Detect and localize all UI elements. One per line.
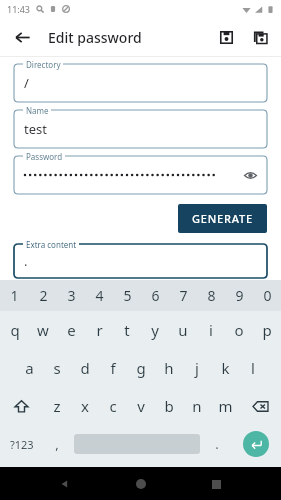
staticText: g [136,358,146,378]
staticText: y [151,320,159,340]
staticText: 1 [10,286,19,305]
button[interactable]: 6 [141,280,169,311]
button[interactable]: t [113,311,141,349]
button[interactable]: Directory [14,64,267,102]
button[interactable]: Enter [243,431,269,457]
button[interactable]: . [203,425,231,463]
staticText: 5 [123,286,132,305]
button[interactable]: i [197,311,225,349]
staticText: 0 [263,286,272,305]
staticText: t [124,320,130,340]
staticText: Password [26,151,63,162]
staticText: test [24,120,47,138]
staticText: Extra content [26,239,77,250]
button[interactable]: e [57,311,85,349]
staticText: . [24,252,28,270]
button[interactable]: c [99,387,127,425]
button[interactable]: d [71,349,99,387]
staticText: . [215,435,219,453]
staticText: p [262,320,272,340]
button[interactable]: q [0,311,29,349]
staticText: 7 [179,286,188,305]
staticText: u [178,320,188,340]
button[interactable]: v [127,387,155,425]
button[interactable]: Home [128,471,154,497]
staticText: l [251,358,255,378]
staticText: f [110,358,116,378]
staticText: h [164,358,174,378]
staticText: 2 [39,286,48,305]
staticText: 9 [235,286,244,305]
button[interactable]: Show password [239,164,261,186]
button[interactable]: m [211,387,239,425]
button[interactable]: Save copy [243,20,277,54]
staticText: Directory [26,59,61,70]
staticText: , [55,435,59,453]
button[interactable]: Name [14,110,267,148]
button[interactable]: Back [52,471,78,497]
button[interactable]: f [99,349,127,387]
button[interactable]: z [43,387,71,425]
staticText: w [37,320,49,340]
staticText: 11:43 [7,3,31,15]
button[interactable]: GENERATE [178,204,267,233]
staticText: c [109,396,117,416]
staticText: n [192,396,202,416]
button[interactable]: 8 [197,280,225,311]
staticText: Name [26,105,49,116]
button[interactable]: a [15,349,43,387]
button[interactable]: x [71,387,99,425]
button[interactable]: n [183,387,211,425]
button[interactable]: j [183,349,211,387]
staticText: d [80,358,90,378]
button[interactable]: 2 [29,280,57,311]
button[interactable]: Save [209,20,243,54]
button[interactable]: 7 [169,280,197,311]
staticText: j [195,358,199,378]
button[interactable]: 0 [253,280,281,311]
staticText: GENERATE [192,211,253,226]
staticText: 8 [207,286,216,305]
button[interactable]: u [169,311,197,349]
button[interactable]: o [225,311,253,349]
button[interactable]: 1 [0,280,29,311]
staticText: z [53,396,61,416]
staticText: ?123 [10,437,34,452]
button[interactable]: Backspace [239,387,281,425]
staticText: 3 [67,286,76,305]
button[interactable]: 3 [57,280,85,311]
button[interactable]: Recents [203,471,229,497]
staticText: k [221,358,230,378]
button[interactable]: , [43,425,71,463]
staticText: b [164,396,174,416]
staticText: 4 [95,286,104,305]
staticText: q [10,320,20,340]
staticText: m [218,396,233,416]
staticText: Edit password [48,28,142,47]
staticText: x [81,396,89,416]
button[interactable]: l [239,349,267,387]
button[interactable]: r [85,311,113,349]
staticText: o [234,320,244,340]
button[interactable]: b [155,387,183,425]
button[interactable]: s [43,349,71,387]
button[interactable]: Password [14,156,267,194]
button[interactable]: ?123 [0,425,43,463]
button[interactable]: 4 [85,280,113,311]
button[interactable]: Shift [0,387,43,425]
button[interactable]: k [211,349,239,387]
staticText: 6 [151,286,160,305]
button[interactable]: Extra content [14,244,267,278]
button[interactable]: Back [7,22,37,52]
button[interactable]: y [141,311,169,349]
button[interactable]: h [155,349,183,387]
button[interactable]: w [29,311,57,349]
button[interactable]: p [253,311,281,349]
button[interactable]: 9 [225,280,253,311]
staticText: i [209,320,213,340]
button[interactable]: g [127,349,155,387]
staticText: s [53,358,61,378]
staticText: v [137,396,145,416]
button[interactable]: 5 [113,280,141,311]
